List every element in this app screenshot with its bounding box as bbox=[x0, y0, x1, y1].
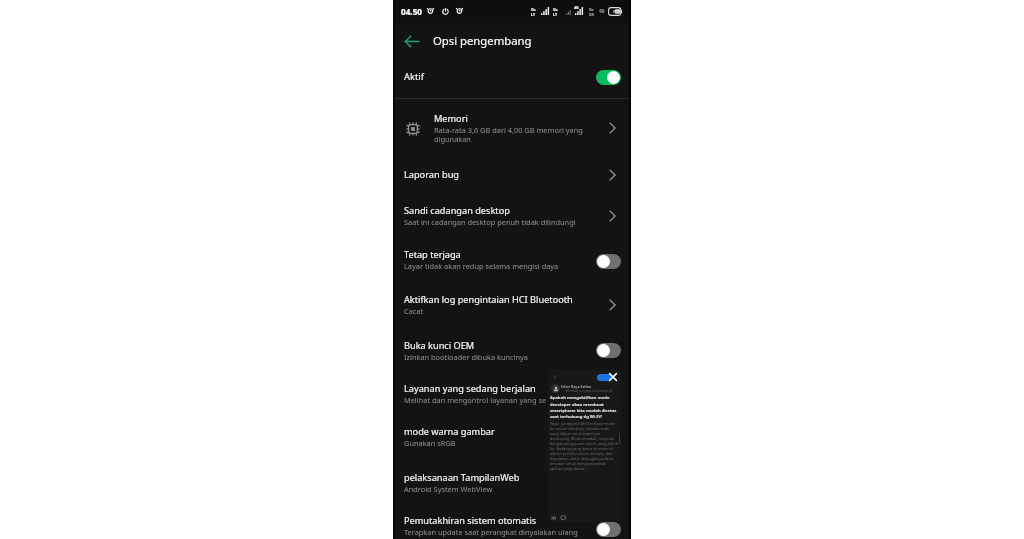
staticText: Apakah mengaktifkan mode developer akan … bbox=[550, 395, 621, 419]
staticText: LTE bbox=[531, 12, 537, 16]
staticText: mode warna gambar bbox=[404, 425, 495, 438]
staticText: XR bbox=[589, 12, 594, 16]
button[interactable]: Back bbox=[399, 28, 425, 54]
button[interactable]: Laporan bug bbox=[393, 155, 631, 194]
button[interactable]: Aktif bbox=[393, 54, 631, 98]
staticText: Nope, pengguna lah Developer mode itu se… bbox=[550, 421, 618, 471]
staticText: Aktifkan log pengintaian HCI Bluetooth bbox=[404, 293, 573, 306]
button[interactable]: Aktifkan log pengintaian HCI Bluetooth bbox=[393, 282, 631, 327]
button[interactable]: pelaksanaan TampilanWeb bbox=[393, 460, 631, 504]
button[interactable]: Layanan yang sedang berjalan bbox=[393, 371, 631, 415]
staticText: Pemutakhiran sistem otomatis bbox=[404, 514, 537, 527]
staticText: Cacat bbox=[404, 306, 424, 316]
staticText: LTE bbox=[553, 12, 559, 16]
staticText: Memori bbox=[434, 112, 468, 125]
staticText: Saat ini cadangan desktop penuh tidak di… bbox=[404, 217, 576, 227]
staticText: Buka kunci OEM bbox=[404, 339, 475, 352]
staticText: 46 bbox=[599, 8, 605, 15]
staticText: Aktif bbox=[404, 70, 424, 83]
staticText: Gunakan sRGB bbox=[404, 438, 456, 448]
staticText: 04.50 bbox=[401, 6, 423, 17]
staticText: Vo bbox=[589, 7, 594, 12]
staticText: Melihat dan mengontrol layanan yang se bbox=[404, 395, 547, 405]
staticText: Sandi cadangan desktop bbox=[404, 204, 510, 217]
button[interactable]: mode warna gambar bbox=[393, 414, 631, 458]
button[interactable]: Memori bbox=[393, 101, 631, 155]
staticText: pelaksanaan TampilanWeb bbox=[404, 471, 520, 484]
button[interactable]: Follow bbox=[597, 374, 611, 381]
button[interactable]: Pemutakhiran sistem otomatis bbox=[393, 505, 631, 539]
staticText: Tetap terjaga bbox=[404, 248, 461, 261]
staticText: Layar tidak akan redup selama mengisi da… bbox=[404, 261, 559, 271]
staticText: Laporan bug bbox=[404, 168, 459, 181]
staticText: Android System WebView bbox=[404, 484, 493, 494]
button[interactable]: Tetap terjaga bbox=[393, 237, 631, 281]
staticText: Izinkan bootloader dibuka kuncinya bbox=[404, 352, 529, 362]
button[interactable]: Close bbox=[608, 372, 618, 382]
staticText: Vo bbox=[531, 7, 536, 12]
staticText: Irfan Raya Salina bbox=[561, 384, 592, 389]
staticText: Opsi pengembang bbox=[433, 33, 532, 48]
staticText: Layanan yang sedang berjalan bbox=[404, 382, 536, 395]
staticText: Q bbox=[553, 374, 557, 379]
staticText: Rata-rata 3,6 GB dari 4,00 GB memori yan… bbox=[434, 125, 584, 144]
button[interactable]: Sandi cadangan desktop bbox=[393, 193, 631, 238]
staticText: Menfaat penjaga kita kompetit.. bbox=[566, 389, 614, 393]
staticText: Vo bbox=[553, 7, 558, 12]
button[interactable]: Buka kunci OEM bbox=[393, 328, 631, 373]
staticText: 52 bbox=[613, 9, 618, 15]
staticText: 4G bbox=[574, 5, 579, 10]
staticText: Terapkan update saat perangkat dinyalaka… bbox=[404, 527, 578, 537]
